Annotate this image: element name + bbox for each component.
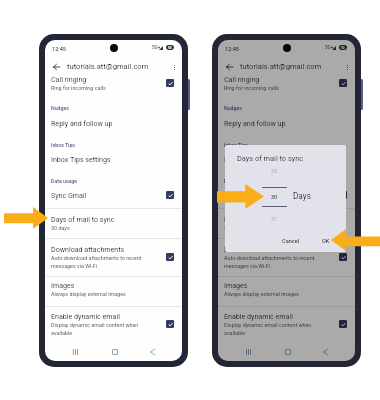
button[interactable]: Enable dynamic email <box>218 312 355 336</box>
staticText: Reply and follow up <box>224 119 286 127</box>
staticText: Reply and follow up <box>51 119 113 127</box>
staticText: Data usage <box>224 178 251 184</box>
staticText: Nudges <box>224 105 242 111</box>
button[interactable]: Download attachments <box>218 245 355 269</box>
staticText: Inbox Tips <box>51 142 76 148</box>
staticText: Images <box>224 281 248 289</box>
staticText: Ring for incoming calls <box>51 85 106 91</box>
button[interactable]: Call ringing <box>218 75 355 91</box>
staticText: Always display external images <box>224 291 299 297</box>
staticText: Auto-download attachments to recent mess… <box>224 255 315 269</box>
staticText: Sync Gmail <box>51 191 87 199</box>
staticText: 30 <box>271 194 278 200</box>
button[interactable]: Navigate up <box>222 60 236 74</box>
button[interactable]: Home <box>280 344 296 360</box>
button[interactable]: Images <box>45 281 182 297</box>
button[interactable]: More options <box>167 60 181 74</box>
button[interactable]: Reply and follow up <box>45 119 182 127</box>
staticText: Display dynamic email content when avail… <box>51 322 139 336</box>
staticText: Inbox Tips settings <box>224 155 284 163</box>
staticText: 92 <box>341 46 345 50</box>
button[interactable]: Call ringing <box>45 75 182 91</box>
staticText: 31 <box>271 216 278 222</box>
staticText: Days of mail to sync <box>51 215 115 223</box>
button[interactable]: Reply and follow up <box>218 119 355 127</box>
button[interactable]: Home <box>107 344 123 360</box>
button[interactable]: Recent apps <box>240 344 256 360</box>
staticText: Download attachments <box>224 245 298 253</box>
staticText: Images <box>51 281 75 289</box>
button[interactable]: Days of mail to sync <box>218 215 355 231</box>
button[interactable]: Images <box>218 281 355 297</box>
staticText: Cancel <box>282 238 300 245</box>
staticText: Enable dynamic email <box>224 312 293 320</box>
staticText: Days <box>293 191 311 201</box>
button[interactable]: Back <box>144 344 160 360</box>
staticText: Days of mail to sync <box>224 215 288 223</box>
staticText: 30 days <box>224 225 243 231</box>
staticText: Always display external images <box>51 291 126 297</box>
button[interactable]: Sync Gmail <box>45 191 182 199</box>
staticText: OK <box>322 238 330 245</box>
button[interactable]: Navigate up <box>49 60 63 74</box>
staticText: Auto-download attachments to recent mess… <box>51 255 142 269</box>
staticText: 5G+ <box>152 45 161 50</box>
button[interactable]: Sync Gmail <box>218 191 355 199</box>
staticText: 30 days <box>51 225 70 231</box>
staticText: tutorials.att@gmail.com <box>240 62 322 71</box>
staticText: Call ringing <box>224 75 260 83</box>
button[interactable]: Recent apps <box>67 344 83 360</box>
button[interactable]: OK <box>320 236 332 247</box>
staticText: Display dynamic email content when avail… <box>224 322 312 336</box>
button[interactable]: Days of mail to sync <box>45 215 182 231</box>
staticText: 5G+ <box>325 45 334 50</box>
staticText: Download attachments <box>51 245 125 253</box>
staticText: Enable dynamic email <box>51 312 120 320</box>
staticText: 12:45 <box>225 46 239 52</box>
button[interactable]: Inbox Tips settings <box>218 155 355 163</box>
staticText: Sync Gmail <box>224 191 260 199</box>
staticText: 29 <box>271 168 278 174</box>
staticText: Ring for incoming calls <box>224 85 279 91</box>
button[interactable]: Enable dynamic email <box>45 312 182 336</box>
staticText: tutorials.att@gmail.com <box>67 62 149 71</box>
staticText: Data usage <box>51 178 78 184</box>
staticText: Inbox Tips settings <box>51 155 111 163</box>
button[interactable]: Back <box>317 344 333 360</box>
button[interactable]: Cancel <box>280 236 302 247</box>
button[interactable]: Download attachments <box>45 245 182 269</box>
button[interactable]: Inbox Tips settings <box>45 155 182 163</box>
staticText: 92 <box>168 46 172 50</box>
staticText: Nudges <box>51 105 69 111</box>
button[interactable]: More options <box>340 60 354 74</box>
staticText: 12:45 <box>52 46 66 52</box>
staticText: Call ringing <box>51 75 87 83</box>
staticText: Days of mail to sync <box>237 154 304 163</box>
staticText: Inbox Tips <box>224 142 249 148</box>
